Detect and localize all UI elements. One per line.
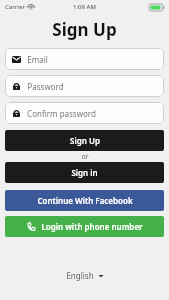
staticText: Email bbox=[27, 54, 48, 65]
button[interactable]: Login with phone number bbox=[5, 216, 164, 237]
staticText: 1:09 AM bbox=[73, 3, 96, 11]
button[interactable]: Email bbox=[5, 48, 164, 70]
staticText: Carrier bbox=[5, 3, 25, 11]
staticText: Password bbox=[27, 81, 64, 92]
button[interactable]: Password bbox=[5, 75, 164, 97]
staticText: Login with phone number bbox=[41, 221, 143, 232]
staticText: Sign Up bbox=[52, 18, 117, 41]
staticText: Confirm password bbox=[27, 108, 96, 119]
staticText: Sign in bbox=[71, 167, 98, 178]
staticText: Continue With Facebook bbox=[37, 195, 133, 206]
staticText: English bbox=[66, 270, 94, 281]
button[interactable]: Continue With Facebook bbox=[5, 190, 164, 211]
button[interactable]: English bbox=[60, 267, 110, 284]
button[interactable]: Sign in bbox=[5, 162, 164, 183]
staticText: Sign Up bbox=[70, 135, 100, 146]
button[interactable]: Confirm password bbox=[5, 102, 164, 124]
staticText: or bbox=[81, 152, 89, 162]
button[interactable]: Sign Up bbox=[5, 130, 164, 151]
